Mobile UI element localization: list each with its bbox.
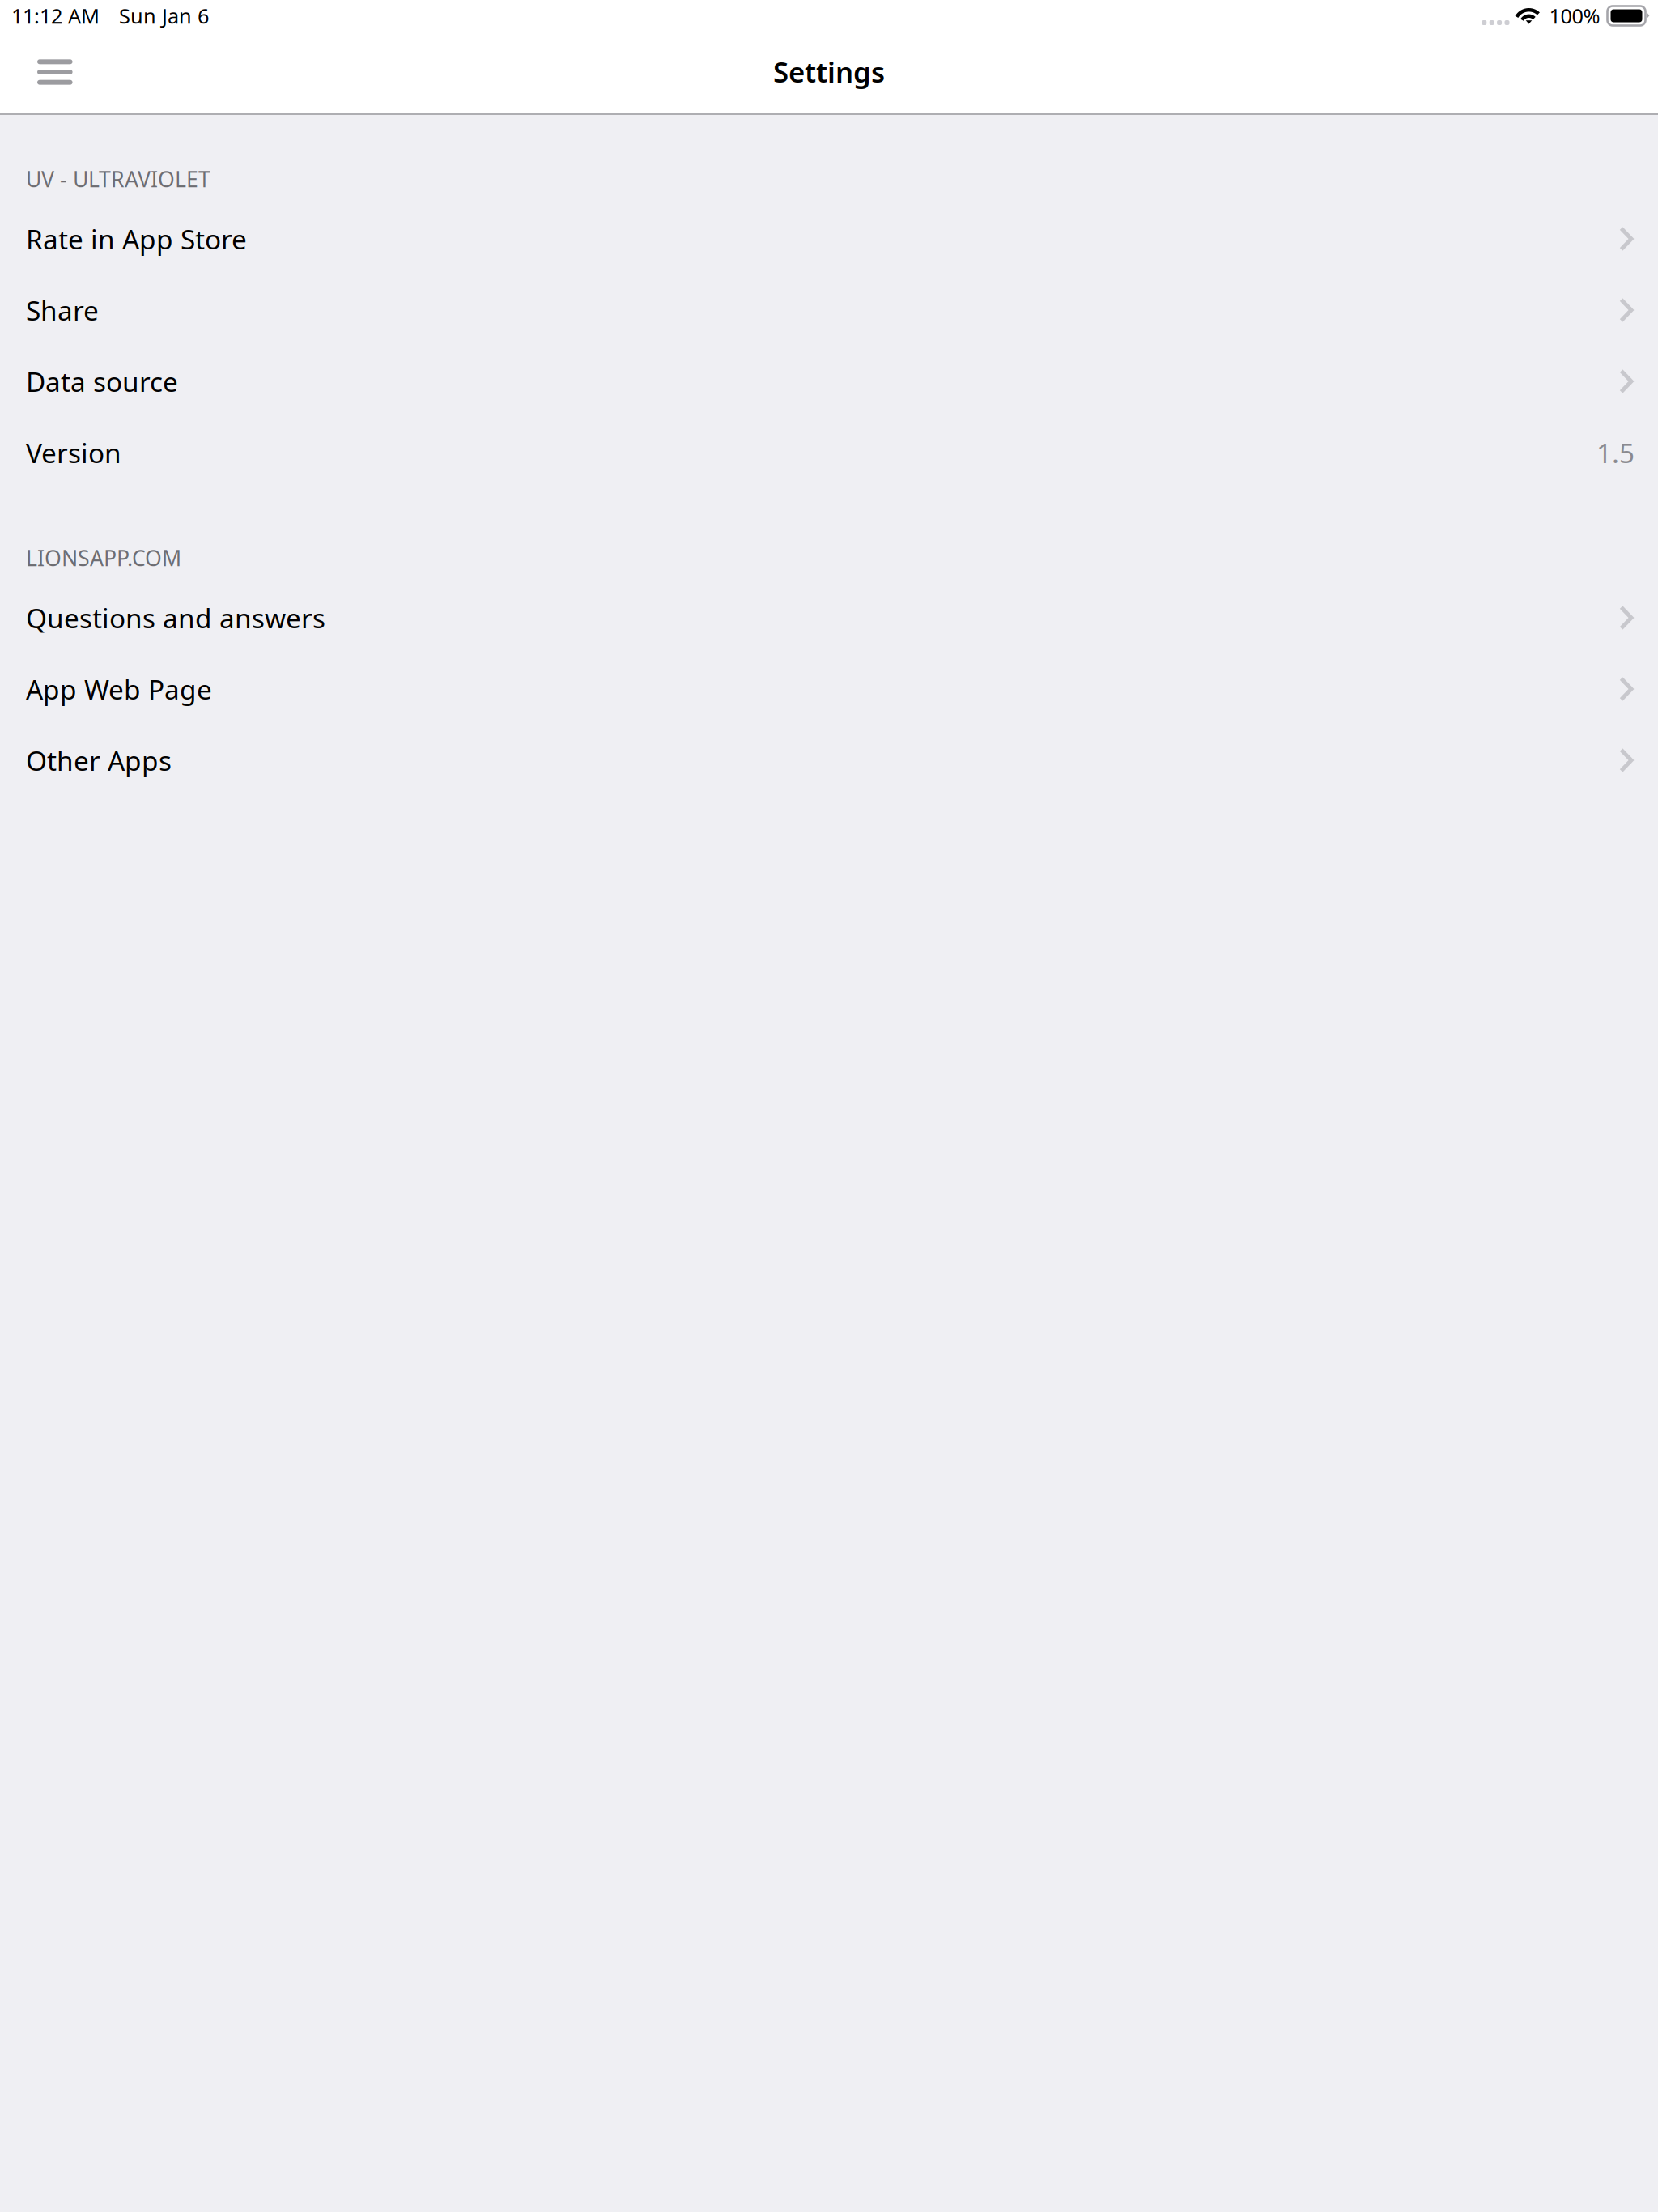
staticText: Data source: [26, 363, 178, 399]
staticText: UV - ULTRAVIOLET: [26, 165, 210, 193]
staticText: App Web Page: [26, 671, 212, 707]
staticText: Rate in App Store: [26, 221, 247, 257]
staticText: Questions and answers: [26, 600, 325, 636]
staticText: 1.5: [1596, 435, 1635, 471]
button[interactable]: Share: [0, 274, 1658, 346]
button[interactable]: Data source: [0, 346, 1658, 417]
staticText: Settings: [773, 53, 885, 90]
staticText: Other Apps: [26, 742, 172, 778]
button[interactable]: App Web Page: [0, 653, 1658, 725]
button[interactable]: Menu: [0, 39, 100, 113]
staticText: Share: [26, 292, 99, 328]
button[interactable]: Version: [0, 417, 1658, 488]
staticText: LIONSAPP.COM: [26, 544, 181, 572]
staticText: Version: [26, 435, 121, 471]
staticText: 100%: [1549, 2, 1600, 29]
staticText: 11:12 AM: [11, 2, 100, 29]
button[interactable]: Other Apps: [0, 725, 1658, 796]
staticText: Sun Jan 6: [119, 2, 209, 29]
button[interactable]: Rate in App Store: [0, 203, 1658, 274]
button[interactable]: Questions and answers: [0, 582, 1658, 653]
